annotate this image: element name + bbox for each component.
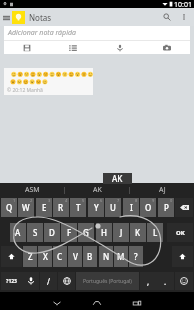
button[interactable]: T [70,198,86,217]
staticText: P [164,202,169,213]
staticText: AK [93,185,102,195]
staticText: ?123 [6,278,17,285]
staticText: G [83,227,89,238]
staticText: 0 [170,198,173,203]
staticText: , [147,276,150,287]
button[interactable]: Recents [117,292,157,310]
staticText: / [47,276,50,287]
button[interactable]: R [53,198,69,217]
button[interactable]: Z [23,246,37,267]
button[interactable]: Period [157,272,174,290]
staticText: 2 [30,198,33,203]
button[interactable]: AJ [130,183,194,197]
staticText: Z [28,251,33,262]
button[interactable]: Backspace [175,198,193,217]
button[interactable]: Search [158,8,176,26]
button[interactable]: O [140,198,156,217]
button[interactable]: Draw note [4,41,50,54]
button[interactable]: J [113,223,129,242]
button[interactable]: ASM [0,183,64,197]
button[interactable]: Comma [140,272,157,290]
button[interactable]: Shift [172,246,193,267]
staticText: L [153,227,158,238]
staticText: W [22,202,30,213]
staticText: N [103,251,110,262]
button[interactable]: Change language [58,272,75,290]
button[interactable]: Symbols [1,272,22,290]
button[interactable]: S [27,223,43,242]
staticText: 9 [152,198,155,203]
staticText: F [67,227,72,238]
button[interactable]: Photo note [143,41,190,54]
button[interactable]: Y [88,198,104,217]
staticText: U [110,202,116,213]
staticText: H [101,227,107,238]
button[interactable]: K [130,223,146,242]
button[interactable]: L [147,223,163,242]
staticText: T [76,202,81,213]
staticText: S [33,227,38,238]
staticText: AJ [159,185,166,195]
button[interactable]: Voice note [96,41,143,54]
staticText: Q [6,202,13,213]
staticText: Adicionar nota rápida [8,28,76,38]
button[interactable]: H [96,223,112,242]
staticText: I [130,202,133,213]
staticText: 10:01 [174,0,192,8]
staticText: ? [134,251,138,262]
staticText: R [58,202,64,213]
button[interactable]: Q [1,198,17,217]
button[interactable]: List note [50,41,96,54]
staticText: 3 [48,198,51,203]
button[interactable]: AK [65,183,129,197]
button[interactable]: More options [176,8,192,26]
staticText: Notas [29,12,52,23]
staticText: M [117,251,125,262]
button[interactable]: Emoji [175,272,193,290]
button[interactable]: Shift [1,246,22,267]
staticText: B [87,251,93,262]
button[interactable]: G [78,223,94,242]
button[interactable]: V [68,246,82,267]
button[interactable]: Slash [40,272,57,290]
staticText: 8 [135,198,138,203]
button[interactable]: Enter [167,223,193,242]
button[interactable]: N [99,246,113,267]
button[interactable]: © 20:12 Manhã [4,68,93,95]
staticText: J [120,227,123,238]
button[interactable]: X [38,246,52,267]
staticText: 1 [13,198,16,203]
button[interactable]: I [123,198,139,217]
staticText: 4 [65,198,68,203]
staticText: . [164,276,167,287]
staticText: 6 [100,198,103,203]
button[interactable]: C [53,246,67,267]
staticText: D [49,227,55,238]
staticText: O [145,202,152,213]
staticText: 7 [117,198,120,203]
button[interactable]: W [18,198,34,217]
button[interactable]: F [61,223,77,242]
staticText: K [135,227,141,238]
staticText: E [42,202,47,213]
button[interactable]: M [114,246,128,267]
button[interactable]: B [83,246,97,267]
button[interactable]: U [105,198,121,217]
staticText: A [15,227,21,238]
button[interactable]: Português (Portugal) [76,272,139,290]
button[interactable]: Menu [1,8,12,26]
staticText: V [73,251,78,262]
staticText: X [43,251,48,262]
staticText: © 20:12 Manhã [7,87,43,94]
button[interactable]: ? [129,246,143,267]
button[interactable]: P [158,198,174,217]
button[interactable]: A [10,223,26,242]
button[interactable]: Home [77,292,117,310]
staticText: OK [176,229,185,237]
button[interactable]: Back [37,292,77,310]
staticText: 5 [82,198,85,203]
staticText: Português (Portugal) [83,278,132,285]
button[interactable]: D [44,223,60,242]
button[interactable]: E [36,198,52,217]
button[interactable]: Voice input [22,272,39,290]
